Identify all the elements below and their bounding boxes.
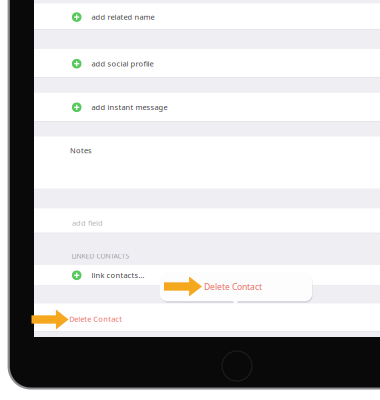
staticText: add social profile [91,58,153,69]
button[interactable]: add instant message [34,97,380,117]
staticText: Notes [70,145,92,155]
staticText: Delete Contact [69,314,122,324]
staticText: add field [72,218,103,228]
button[interactable]: Notes [34,137,380,189]
staticText: add instant message [91,102,167,112]
staticText: add related name [91,12,154,22]
button[interactable]: add social profile [34,53,380,73]
button[interactable]: add related name [34,7,380,27]
button[interactable]: link contacts... [34,265,380,285]
button[interactable]: Delete Contact [34,303,380,332]
staticText: LINKED CONTACTS [71,251,129,261]
staticText: link contacts... [91,270,144,280]
staticText: Delete Contact [204,281,262,293]
button[interactable]: add field [34,208,380,233]
